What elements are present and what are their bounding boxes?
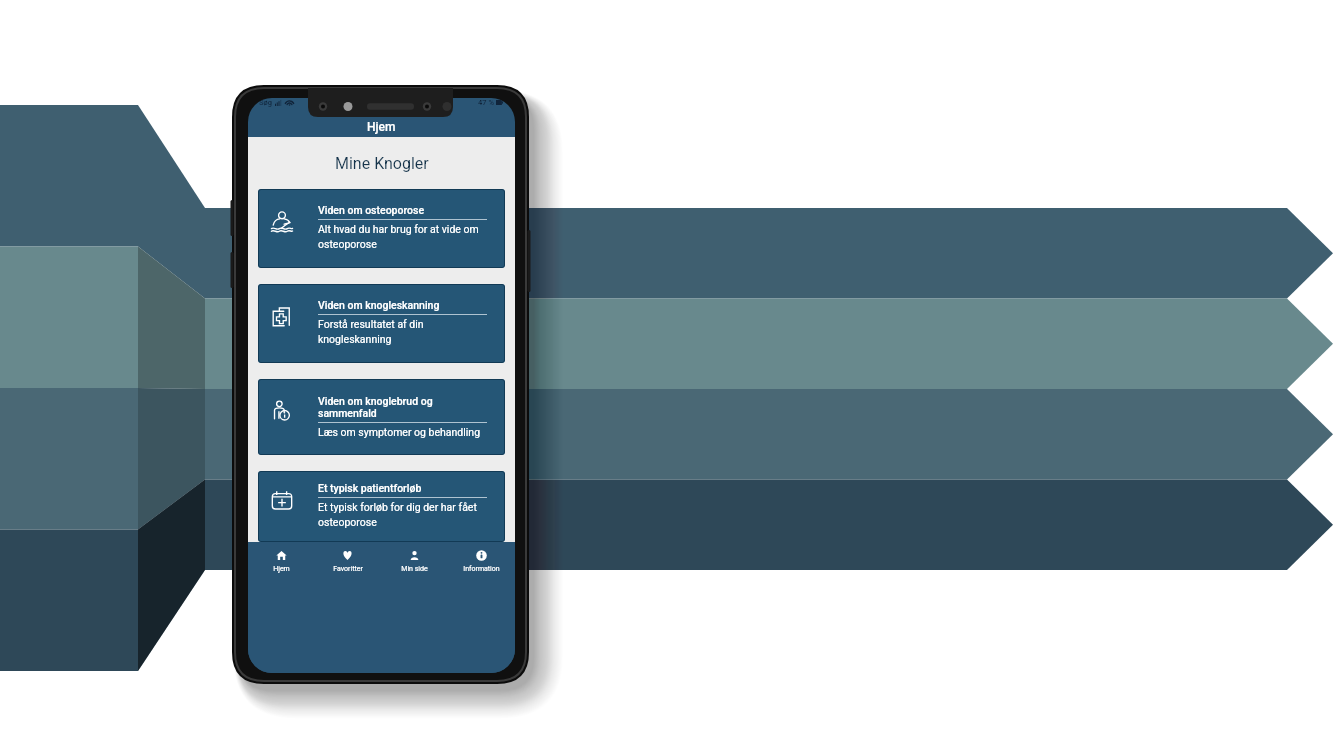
staticText: Mine Knogler xyxy=(335,154,429,173)
staticText: Et typisk forløb for dig der har fået os… xyxy=(318,501,487,529)
button[interactable]: Viden om knogleskanning xyxy=(258,284,505,363)
button[interactable]: Viden om knoglebrud og sammenfald xyxy=(258,379,505,455)
button[interactable]: Et typisk patientforløb xyxy=(258,471,505,542)
staticText: Min side xyxy=(401,565,428,573)
staticText: Forstå resultatet af din knogleskanning xyxy=(318,318,487,346)
staticText: Søg xyxy=(259,98,273,107)
button[interactable]: Favoritter xyxy=(314,542,381,573)
button[interactable]: Viden om osteoporose xyxy=(258,189,505,268)
staticText: Læs om symptomer og behandling xyxy=(318,426,481,438)
staticText: Viden om knogleskanning xyxy=(318,299,440,311)
staticText: Hjem xyxy=(367,120,396,134)
staticText: Alt hvad du har brug for at vide om oste… xyxy=(318,223,487,251)
button[interactable]: Min side xyxy=(381,542,448,573)
staticText: 47 % xyxy=(478,98,494,107)
staticText: Viden om knoglebrud og sammenfald xyxy=(318,395,487,419)
button[interactable]: Hjem xyxy=(248,542,314,573)
button[interactable]: Information xyxy=(448,542,515,573)
staticText: Hjem xyxy=(273,565,290,573)
staticText: Information xyxy=(463,565,500,573)
staticText: Viden om osteoporose xyxy=(318,204,425,216)
staticText: Favoritter xyxy=(333,565,363,573)
staticText: Et typisk patientforløb xyxy=(318,482,422,494)
